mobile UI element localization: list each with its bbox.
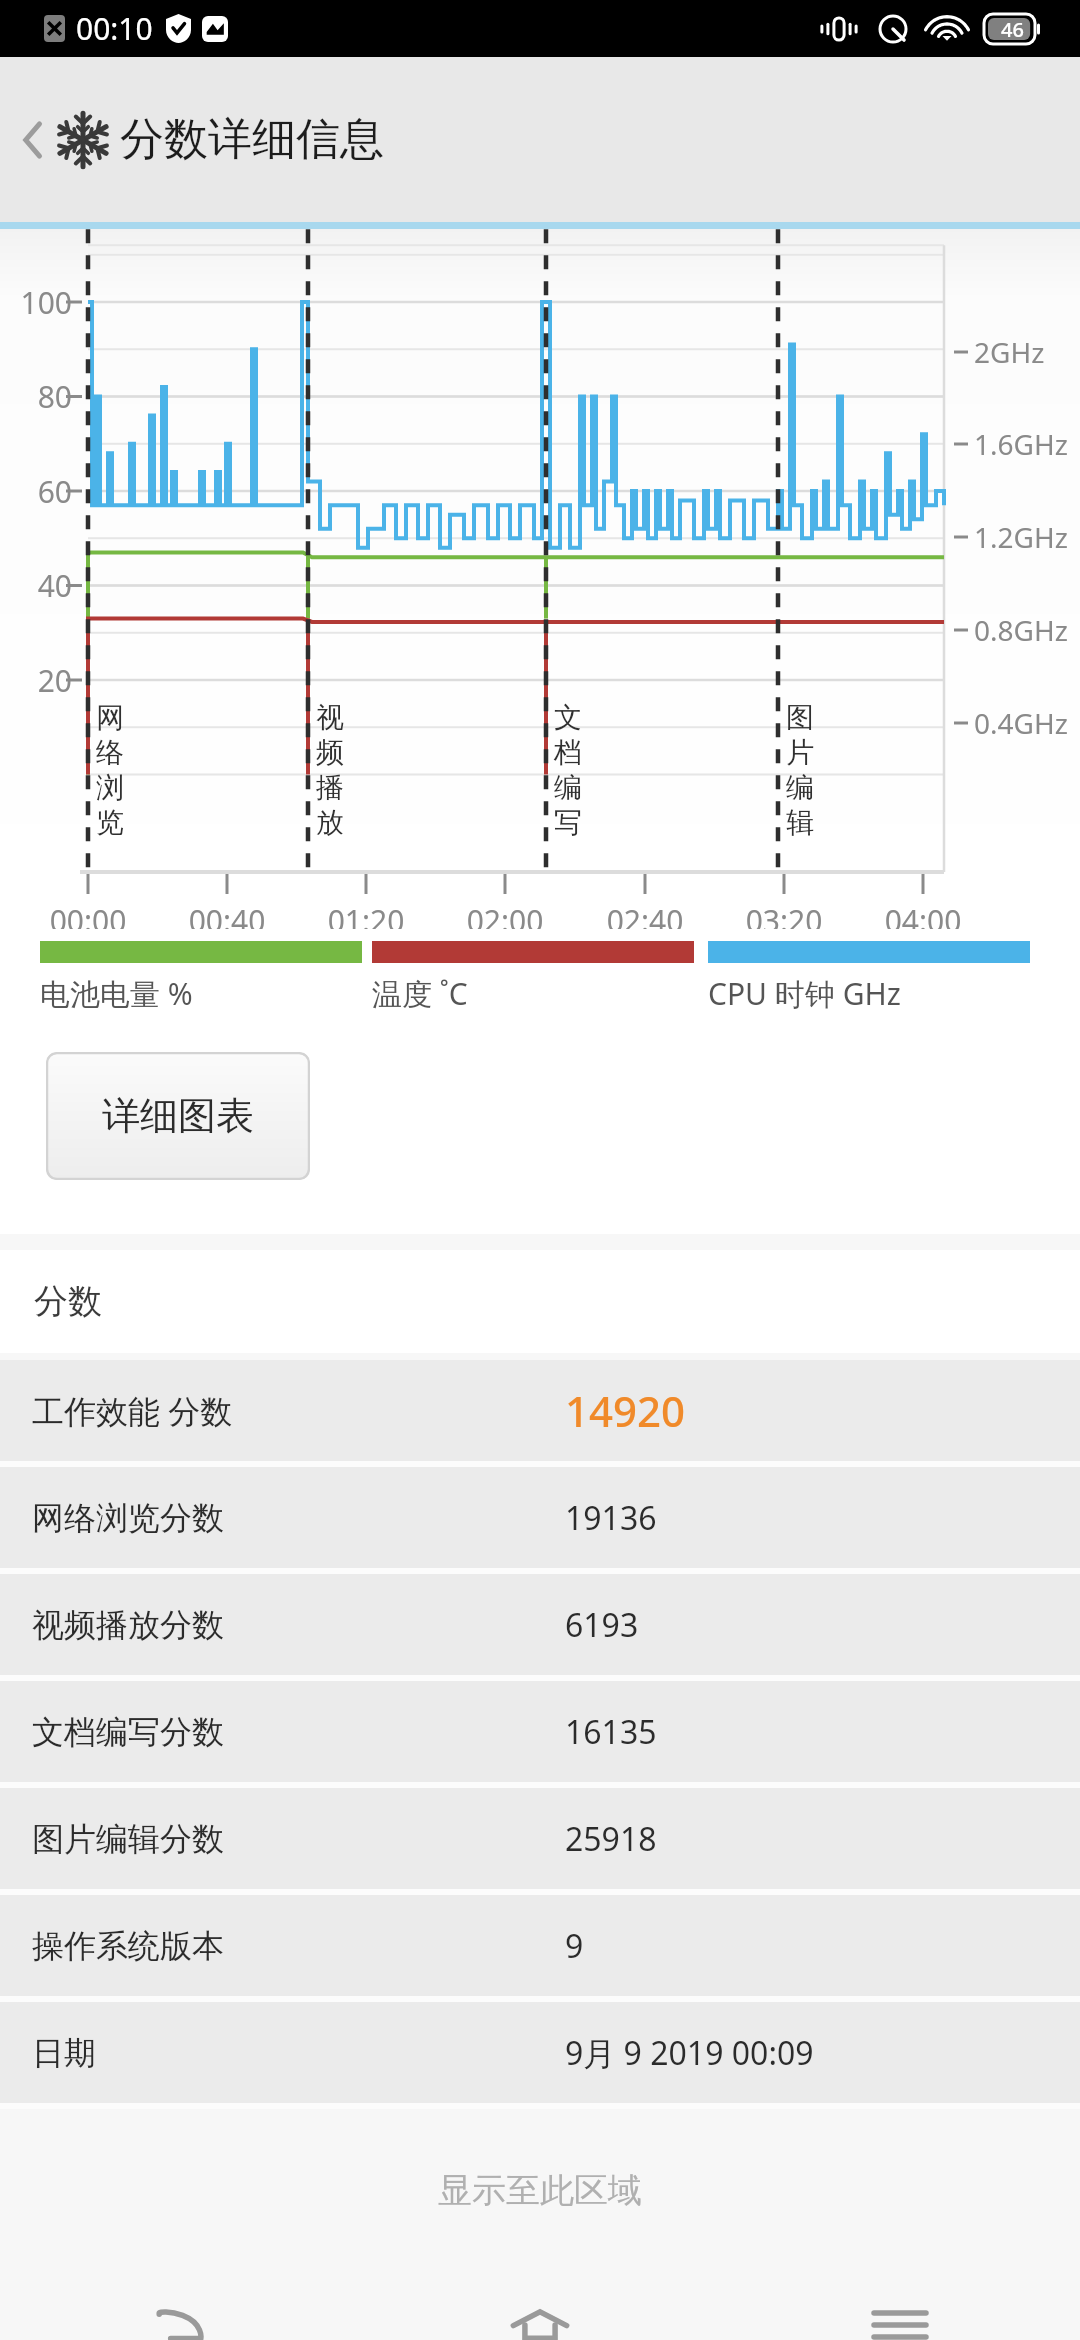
staticText: 0.8GHz — [974, 611, 1068, 649]
staticText: 14920 — [565, 1382, 686, 1439]
staticText: 写 — [554, 805, 582, 840]
staticText: 2GHz — [974, 333, 1045, 371]
staticText: 60 — [14, 471, 72, 512]
staticText: 览 — [96, 805, 124, 840]
staticText: 操作系统版本 — [32, 1926, 224, 1966]
staticText: 图 — [786, 700, 814, 735]
staticText: 100 — [14, 282, 72, 323]
staticText: 辑 — [786, 805, 814, 840]
staticText: 00:00 — [33, 900, 143, 941]
staticText: 编 — [786, 770, 814, 805]
staticText: 日期 — [32, 2033, 96, 2073]
staticText: 80 — [14, 376, 72, 417]
staticText: 03:20 — [729, 900, 839, 941]
staticText: 图片编辑分数 — [32, 1819, 224, 1859]
staticText: 档 — [554, 735, 582, 770]
button[interactable]: Back — [12, 103, 120, 177]
button[interactable]: Home — [480, 2310, 600, 2340]
staticText: 电池电量 % — [40, 973, 193, 1014]
staticText: 片 — [786, 735, 814, 770]
staticText: 频 — [316, 735, 344, 770]
staticText: CPU 时钟 GHz — [708, 973, 901, 1014]
staticText: 显示至此区域 — [438, 2169, 642, 2212]
button[interactable]: 视频播放分数 — [0, 1574, 1080, 1675]
staticText: 6193 — [565, 1603, 639, 1647]
staticText: 9 — [565, 1924, 584, 1968]
staticText: 1.2GHz — [974, 518, 1068, 556]
staticText: 04:00 — [868, 900, 978, 941]
staticText: 络 — [96, 735, 124, 770]
staticText: 1.6GHz — [974, 425, 1068, 463]
staticText: 视频播放分数 — [32, 1605, 224, 1645]
staticText: 46 — [1001, 16, 1024, 43]
staticText: 25918 — [565, 1817, 657, 1861]
button[interactable]: 网络浏览分数 — [0, 1467, 1080, 1568]
button[interactable]: Back — [120, 2310, 240, 2340]
staticText: 编 — [554, 770, 582, 805]
button[interactable]: 工作效能 分数 — [0, 1360, 1080, 1461]
staticText: 分数详细信息 — [120, 112, 384, 167]
staticText: 播 — [316, 770, 344, 805]
staticText: 02:40 — [590, 900, 700, 941]
staticText: 工作效能 分数 — [32, 1389, 233, 1433]
staticText: 9月 9 2019 00:09 — [565, 2031, 814, 2075]
button[interactable]: 操作系统版本 — [0, 1895, 1080, 1996]
button[interactable]: Menu — [840, 2310, 960, 2340]
staticText: 19136 — [565, 1496, 657, 1540]
button[interactable]: 详细图表 — [46, 1052, 310, 1180]
staticText: 40 — [14, 565, 72, 606]
staticText: 0.4GHz — [974, 704, 1068, 742]
staticText: 放 — [316, 805, 344, 840]
staticText: 文档编写分数 — [32, 1712, 224, 1752]
staticText: 分数 — [34, 1280, 102, 1323]
button[interactable]: 文档编写分数 — [0, 1681, 1080, 1782]
staticText: 视 — [316, 700, 344, 735]
staticText: 00:10 — [76, 8, 153, 49]
staticText: 01:20 — [311, 900, 421, 941]
staticText: 文 — [554, 700, 582, 735]
button[interactable]: 日期 — [0, 2002, 1080, 2103]
staticText: 网络浏览分数 — [32, 1498, 224, 1538]
staticText: 浏 — [96, 770, 124, 805]
staticText: 20 — [14, 660, 72, 701]
staticText: 温度 ˚C — [372, 973, 468, 1014]
staticText: 02:00 — [450, 900, 560, 941]
staticText: 16135 — [565, 1710, 657, 1754]
staticText: 网 — [96, 700, 124, 735]
button[interactable]: 图片编辑分数 — [0, 1788, 1080, 1889]
staticText: 00:40 — [172, 900, 282, 941]
staticText: 详细图表 — [102, 1092, 254, 1140]
